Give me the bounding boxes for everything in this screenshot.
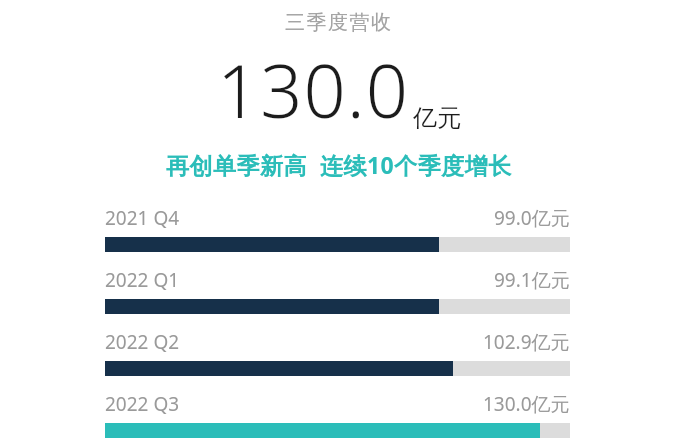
staticText: 2022 Q1 <box>105 267 180 293</box>
staticText: 2022 Q3 <box>105 391 180 417</box>
staticText: 130.0亿元 <box>483 391 570 417</box>
button[interactable]: 2022 Q2 <box>105 329 570 376</box>
button[interactable]: 2022 Q1 <box>105 267 570 314</box>
staticText: 102.9亿元 <box>483 329 570 355</box>
staticText: 再创单季新高 连续10个季度增长 <box>166 149 512 180</box>
staticText: 99.0亿元 <box>494 205 570 231</box>
staticText: 三季度营收 <box>285 10 393 35</box>
staticText: 130.0 <box>217 39 410 140</box>
button[interactable]: 2022 Q3 <box>105 391 570 438</box>
staticText: 99.1亿元 <box>494 267 570 293</box>
staticText: 2022 Q2 <box>105 329 180 355</box>
staticText: 亿元 <box>413 103 461 133</box>
staticText: 2021 Q4 <box>105 205 180 231</box>
button[interactable]: 2021 Q4 <box>105 205 570 252</box>
